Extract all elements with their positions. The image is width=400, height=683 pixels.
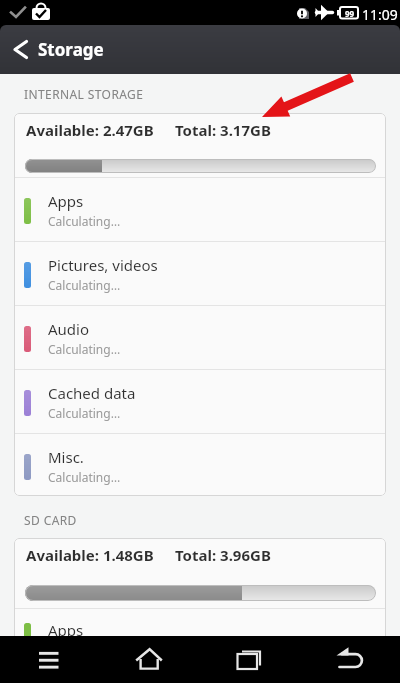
staticText: SD CARD [24, 512, 77, 528]
button[interactable] [320, 636, 380, 683]
button[interactable] [219, 636, 279, 683]
button[interactable]: Cached data [14, 369, 386, 433]
staticText: Calculating… [48, 341, 121, 357]
button[interactable] [18, 636, 78, 683]
staticText: Available: 2.47GB [26, 120, 154, 140]
button[interactable]: Storage [0, 25, 400, 74]
staticText: Calculating… [48, 213, 121, 229]
staticText: Calculating… [48, 469, 121, 485]
button[interactable]: Apps [14, 608, 386, 683]
staticText: Apps [48, 620, 84, 640]
button[interactable]: Audio [14, 305, 386, 369]
staticText: Audio [48, 319, 90, 339]
staticText: Apps [48, 191, 84, 211]
staticText: Cached data [48, 383, 136, 403]
staticText: Pictures, videos [48, 255, 158, 275]
button[interactable]: Pictures, videos [14, 241, 386, 305]
staticText: Misc. [48, 447, 84, 467]
staticText: Storage [38, 38, 104, 61]
staticText: Calculating… [48, 405, 121, 421]
staticText: Available: 1.48GB [26, 545, 154, 565]
button[interactable]: Misc. [14, 433, 386, 496]
staticText: Calculating… [48, 277, 121, 293]
button[interactable]: Apps [14, 177, 386, 241]
staticText: INTERNAL STORAGE [24, 86, 144, 102]
button[interactable] [120, 636, 180, 683]
staticText: 11:09 [362, 5, 398, 24]
staticText: 99 [345, 8, 355, 19]
staticText: Total: 3.96GB [175, 545, 271, 565]
staticText: Total: 3.17GB [175, 120, 271, 140]
